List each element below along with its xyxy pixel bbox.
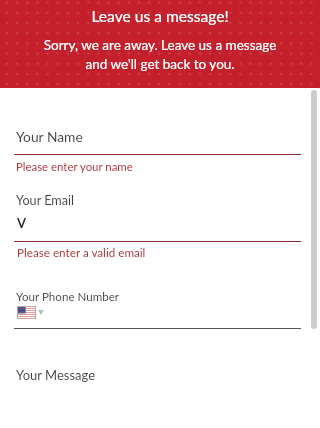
staticText: V — [17, 215, 27, 231]
button[interactable]: Your Email — [14, 188, 301, 242]
staticText: Your Name — [16, 128, 83, 145]
staticText: Please enter your name — [16, 160, 133, 174]
button[interactable]: Select country calling code — [17, 306, 44, 319]
staticText: Sorry, we are away. Leave us a message a… — [0, 37, 320, 72]
staticText: Leave us a message! — [0, 7, 320, 26]
button[interactable]: Your Message — [14, 360, 301, 420]
button[interactable]: Your Phone Number — [14, 286, 301, 329]
staticText: Your Email — [16, 193, 74, 208]
button[interactable]: Your Name — [14, 120, 301, 155]
staticText: Your Message — [16, 367, 96, 383]
staticText: Your Phone Number — [16, 290, 120, 304]
staticText: Please enter a valid email — [17, 245, 146, 259]
